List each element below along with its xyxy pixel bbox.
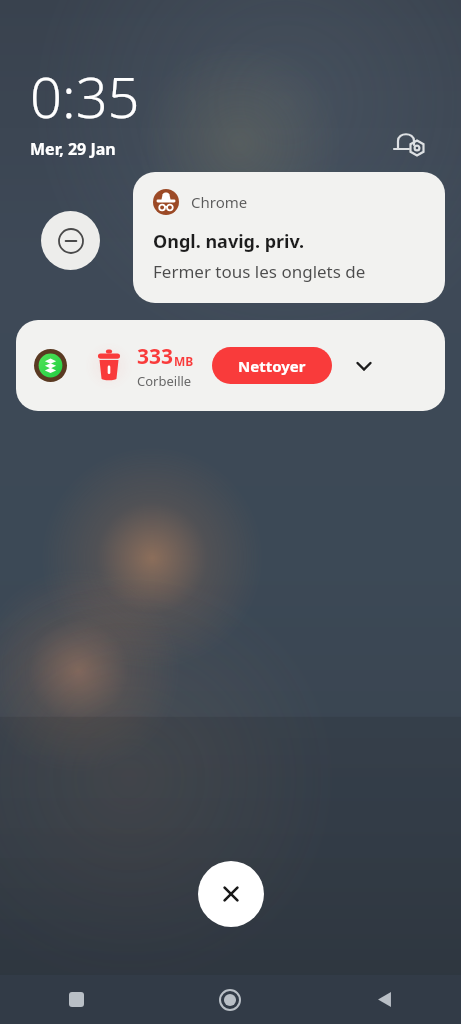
button[interactable]: Home (153, 975, 307, 1024)
staticText: 0:35 (30, 58, 140, 134)
button[interactable]: Silence notification (41, 211, 100, 270)
staticText: Mer, 29 Jan (30, 138, 116, 160)
button[interactable]: Nettoyer (212, 347, 332, 384)
button[interactable]: Expand (348, 350, 380, 382)
button[interactable]: 333 (16, 320, 445, 411)
staticText: Fermer tous les onglets de navigation pr… (153, 260, 445, 283)
staticText: Chrome (191, 192, 248, 212)
staticText: Corbeille (137, 372, 192, 390)
button[interactable]: Recent apps (0, 975, 153, 1024)
staticText: Nettoyer (238, 356, 306, 376)
button[interactable]: Close (198, 861, 264, 927)
staticText: MB (174, 353, 194, 369)
staticText: Ongl. navig. priv. (153, 229, 305, 254)
button[interactable]: Notification settings (388, 122, 432, 166)
staticText: 333 (137, 342, 174, 371)
button[interactable]: Back (307, 975, 461, 1024)
button[interactable]: Chrome (133, 172, 445, 303)
